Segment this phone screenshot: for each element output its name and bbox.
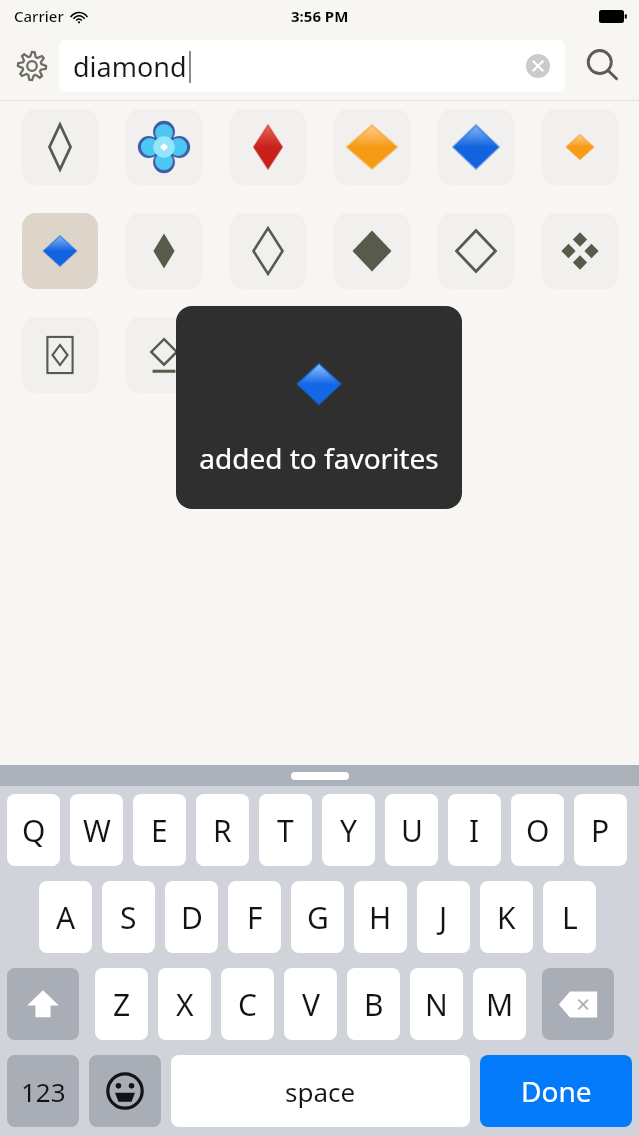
- button[interactable]: Backspace: [542, 968, 614, 1040]
- button[interactable]: T: [259, 794, 312, 866]
- staticText: space: [285, 1074, 356, 1109]
- button[interactable]: black diamond: [334, 213, 410, 289]
- staticText: H: [369, 897, 392, 938]
- staticText: 3:56 PM: [291, 6, 349, 26]
- button[interactable]: small blue diamond: [22, 213, 98, 289]
- staticText: N: [425, 984, 448, 1025]
- button[interactable]: diamond with a dot: [126, 109, 202, 185]
- button[interactable]: large orange diamond: [334, 109, 410, 185]
- button[interactable]: Z: [95, 968, 148, 1040]
- staticText: added to favorites: [176, 439, 462, 477]
- staticText: C: [238, 984, 257, 1025]
- button[interactable]: diamond over line: [126, 317, 202, 393]
- button[interactable]: filled narrow diamond: [126, 213, 202, 289]
- button[interactable]: N: [410, 968, 463, 1040]
- button[interactable]: diamond in a box: [22, 317, 98, 393]
- staticText: A: [56, 897, 76, 938]
- button[interactable]: B: [347, 968, 400, 1040]
- button[interactable]: V: [284, 968, 337, 1040]
- staticText: E: [151, 810, 168, 851]
- button[interactable]: W: [70, 794, 123, 866]
- staticText: D: [181, 897, 203, 938]
- staticText: T: [277, 810, 294, 851]
- staticText: F: [247, 897, 263, 938]
- button[interactable]: Shift: [7, 968, 79, 1040]
- staticText: Q: [22, 810, 46, 851]
- button[interactable]: small orange diamond: [542, 109, 618, 185]
- button[interactable]: Search: [573, 36, 633, 96]
- staticText: W: [83, 810, 111, 851]
- button[interactable]: red diamond: [230, 109, 306, 185]
- staticText: O: [526, 810, 550, 851]
- button[interactable]: Y: [322, 794, 375, 866]
- button[interactable]: E: [133, 794, 186, 866]
- staticText: P: [591, 810, 610, 851]
- button[interactable]: H: [354, 881, 407, 953]
- button[interactable]: L: [543, 881, 596, 953]
- staticText: S: [120, 897, 137, 938]
- button[interactable]: diamond outline: [22, 109, 98, 185]
- button[interactable]: J: [417, 881, 470, 953]
- button[interactable]: K: [480, 881, 533, 953]
- button[interactable]: P: [574, 794, 627, 866]
- button[interactable]: X: [158, 968, 211, 1040]
- staticText: Z: [113, 984, 131, 1025]
- staticText: X: [176, 984, 194, 1025]
- button[interactable]: white diamond: [230, 213, 306, 289]
- button[interactable]: Q: [7, 794, 60, 866]
- button[interactable]: C: [221, 968, 274, 1040]
- button[interactable]: four diamonds: [542, 213, 618, 289]
- button[interactable]: S: [102, 881, 155, 953]
- button[interactable]: F: [228, 881, 281, 953]
- staticText: Y: [340, 810, 357, 851]
- button[interactable]: Clear text: [523, 51, 553, 81]
- button[interactable]: M: [473, 968, 526, 1040]
- button[interactable]: space: [171, 1055, 470, 1127]
- staticText: 123: [21, 1074, 66, 1109]
- button[interactable]: G: [291, 881, 344, 953]
- button[interactable]: D: [165, 881, 218, 953]
- staticText: Done: [521, 1072, 592, 1110]
- button[interactable]: added to favorites: [176, 306, 462, 509]
- button[interactable]: Emoji keyboard: [89, 1055, 161, 1127]
- staticText: M: [486, 984, 514, 1025]
- staticText: I: [469, 810, 480, 851]
- button[interactable]: large white diamond: [438, 213, 514, 289]
- staticText: U: [401, 810, 423, 851]
- button[interactable]: I: [448, 794, 501, 866]
- button[interactable]: R: [196, 794, 249, 866]
- staticText: diamond: [73, 48, 187, 85]
- button[interactable]: diamond: [59, 40, 565, 92]
- button[interactable]: U: [385, 794, 438, 866]
- button[interactable]: Numbers: [7, 1055, 79, 1127]
- button[interactable]: large blue diamond: [438, 109, 514, 185]
- staticText: Carrier: [14, 6, 64, 26]
- staticText: V: [302, 984, 320, 1025]
- button[interactable]: A: [39, 881, 92, 953]
- button[interactable]: Done: [480, 1055, 632, 1127]
- button[interactable]: O: [511, 794, 564, 866]
- staticText: J: [439, 897, 448, 938]
- button[interactable]: Settings: [6, 40, 58, 92]
- staticText: G: [307, 897, 329, 938]
- staticText: K: [497, 897, 516, 938]
- staticText: B: [364, 984, 384, 1025]
- staticText: L: [562, 897, 578, 938]
- staticText: R: [213, 810, 232, 851]
